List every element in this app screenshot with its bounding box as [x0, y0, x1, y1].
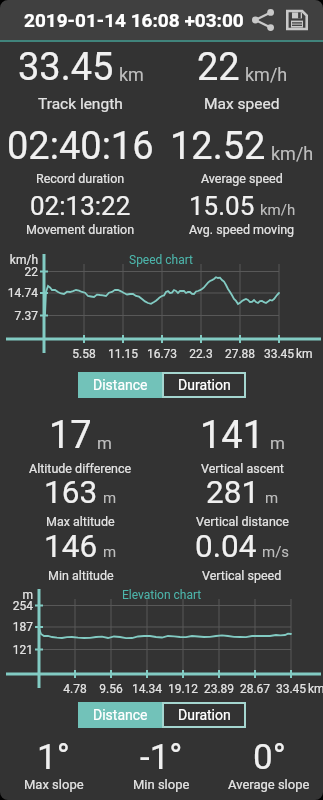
- staticText: 281: [206, 474, 260, 511]
- staticText: Vertical speed: [202, 568, 282, 583]
- staticText: m/s: [262, 543, 290, 561]
- button[interactable]: Distance: [78, 372, 162, 398]
- staticText: Avg. speed moving: [189, 222, 295, 237]
- staticText: m: [103, 489, 117, 507]
- staticText: 33.45: [18, 45, 114, 90]
- staticText: Min altitude: [48, 568, 114, 583]
- staticText: km/h: [245, 64, 288, 85]
- staticText: 121: [0, 643, 33, 657]
- staticText: Speed chart: [129, 253, 194, 267]
- staticText: Duration: [178, 377, 231, 393]
- staticText: Elevation chart: [122, 588, 202, 602]
- staticText: 2019-01-14 16:08 +03:00: [24, 9, 244, 31]
- staticText: 163: [44, 474, 98, 511]
- staticText: Average slope: [228, 777, 310, 792]
- staticText: Min slope: [133, 777, 190, 792]
- staticText: 9.56: [89, 682, 133, 696]
- staticText: 14.34: [125, 682, 169, 696]
- staticText: 22: [197, 45, 240, 90]
- staticText: Average speed: [201, 171, 283, 186]
- staticText: km: [119, 64, 144, 85]
- button[interactable]: Duration: [162, 702, 246, 728]
- staticText: 1°: [37, 737, 70, 778]
- staticText: km/h: [260, 201, 296, 219]
- staticText: km: [296, 347, 313, 361]
- staticText: Max speed: [204, 95, 280, 113]
- staticText: Duration: [178, 707, 231, 723]
- staticText: 141: [200, 413, 265, 458]
- staticText: Vertical ascent: [201, 461, 284, 476]
- staticText: 02:40:16: [7, 124, 154, 169]
- staticText: 146: [44, 528, 98, 565]
- staticText: m: [103, 543, 117, 561]
- staticText: 33.45: [257, 347, 301, 361]
- staticText: Distance: [93, 377, 148, 393]
- staticText: -1°: [140, 737, 183, 778]
- staticText: 5.58: [62, 347, 106, 361]
- staticText: Record duration: [36, 171, 125, 186]
- staticText: 11.15: [101, 347, 145, 361]
- staticText: m: [270, 433, 285, 453]
- staticText: 15.05: [189, 191, 255, 221]
- staticText: m: [265, 489, 279, 507]
- staticText: 28.67: [233, 682, 277, 696]
- staticText: 02:13:22: [30, 191, 131, 221]
- staticText: 22.3: [179, 347, 223, 361]
- button[interactable]: Distance: [78, 702, 162, 728]
- staticText: Distance: [93, 707, 148, 723]
- staticText: Altitude difference: [29, 461, 132, 476]
- staticText: Max slope: [24, 777, 84, 792]
- staticText: Track length: [38, 95, 123, 113]
- staticText: 33.45: [269, 682, 313, 696]
- staticText: 0.04: [195, 528, 257, 565]
- staticText: 27.88: [218, 347, 262, 361]
- staticText: Max altitude: [46, 514, 115, 529]
- staticText: km/h: [0, 253, 38, 267]
- staticText: 7.37: [0, 309, 38, 323]
- staticText: 22: [0, 265, 38, 279]
- staticText: 23.89: [197, 682, 241, 696]
- staticText: 17: [49, 413, 92, 458]
- button[interactable]: [282, 5, 312, 35]
- staticText: 254: [0, 599, 33, 613]
- staticText: km: [308, 682, 323, 696]
- button[interactable]: Duration: [162, 372, 246, 398]
- staticText: 4.78: [53, 682, 97, 696]
- staticText: Vertical distance: [196, 514, 289, 529]
- staticText: m: [0, 588, 33, 602]
- staticText: 16.73: [140, 347, 184, 361]
- staticText: 12.52: [170, 124, 266, 169]
- staticText: 19.12: [161, 682, 205, 696]
- staticText: 187: [0, 620, 33, 634]
- button[interactable]: [248, 5, 278, 35]
- staticText: Movement duration: [26, 222, 135, 237]
- staticText: 14.74: [0, 286, 38, 300]
- staticText: km/h: [271, 143, 314, 164]
- staticText: m: [97, 433, 112, 453]
- staticText: 0°: [253, 737, 286, 778]
